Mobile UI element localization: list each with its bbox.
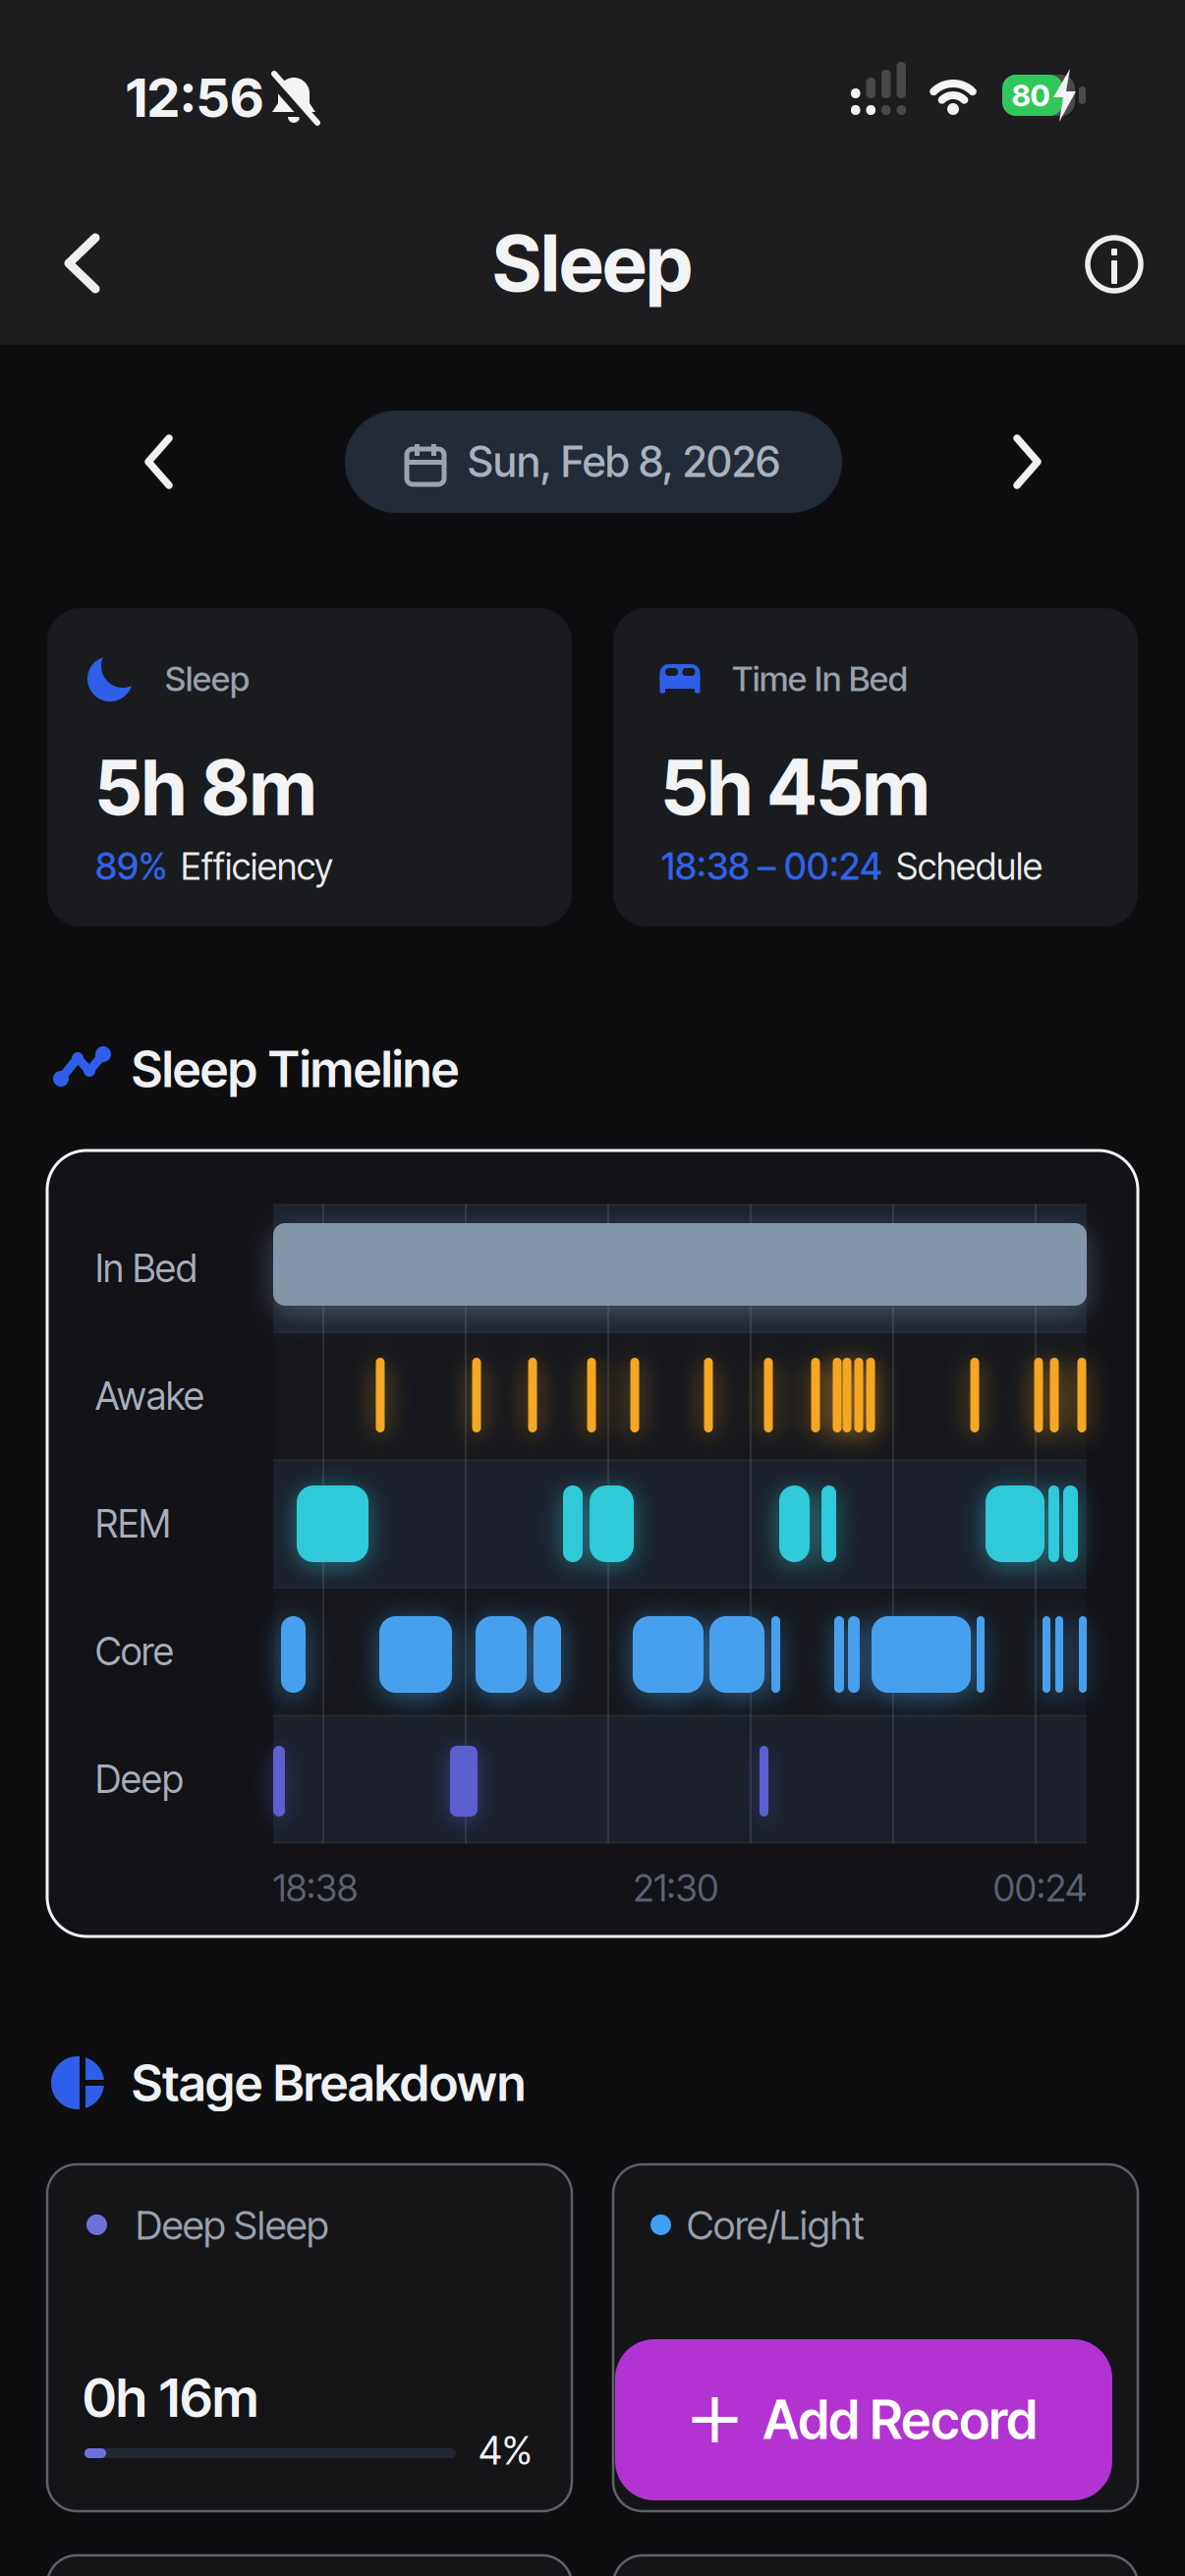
staticText: 18:38: [273, 1867, 358, 1910]
staticText: Efficiency: [181, 845, 333, 888]
staticText: Schedule: [896, 845, 1043, 888]
button[interactable]: Info: [1075, 225, 1154, 304]
staticText: Awake: [95, 1374, 204, 1418]
staticText: 00:24: [993, 1867, 1087, 1910]
staticText: 0h 16m: [83, 2366, 258, 2429]
staticText: Sleep Timeline: [132, 1040, 459, 1098]
staticText: In Bed: [95, 1246, 197, 1291]
staticText: Core: [95, 1629, 174, 1674]
staticText: 18:38 – 00:24: [661, 845, 882, 888]
staticText: 12:56: [126, 66, 263, 129]
staticText: Deep: [95, 1757, 184, 1802]
staticText: Sleep: [493, 218, 692, 309]
staticText: Core/Light: [687, 2202, 865, 2248]
staticText: 89%: [95, 845, 167, 888]
staticText: 80: [1012, 78, 1050, 113]
button[interactable]: Next day: [987, 427, 1056, 496]
staticText: Deep Sleep: [136, 2202, 328, 2248]
button[interactable]: Previous day: [130, 427, 198, 496]
button[interactable]: Add Record: [615, 2339, 1112, 2500]
staticText: Stage Breakdown: [132, 2053, 526, 2112]
button[interactable]: Sun, Feb 8, 2026: [345, 411, 842, 513]
staticText: REM: [95, 1501, 171, 1546]
staticText: Time In Bed: [732, 659, 908, 699]
button[interactable]: Back: [43, 224, 122, 303]
staticText: 21:30: [633, 1867, 719, 1910]
staticText: 4%: [479, 2427, 533, 2473]
staticText: 5h 45m: [661, 742, 930, 832]
staticText: Sun, Feb 8, 2026: [468, 437, 780, 486]
staticText: Sleep: [165, 659, 250, 699]
staticText: 5h 8m: [95, 742, 316, 832]
staticText: Add Record: [763, 2389, 1037, 2451]
